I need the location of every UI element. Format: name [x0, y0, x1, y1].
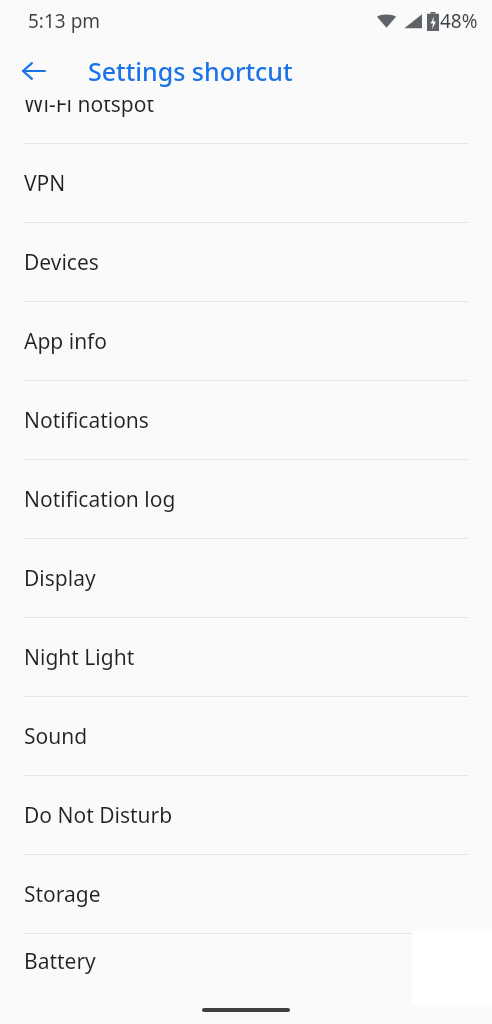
staticText: Do Not Disturb: [24, 801, 173, 830]
button[interactable]: Night Light: [0, 618, 492, 697]
staticText: Display: [24, 564, 96, 593]
button[interactable]: Battery: [0, 934, 492, 989]
staticText: App info: [24, 327, 108, 356]
staticText: Sound: [24, 722, 88, 751]
staticText: Devices: [24, 248, 99, 277]
button[interactable]: Do Not Disturb: [0, 776, 492, 855]
staticText: Notification log: [24, 485, 176, 514]
button[interactable]: Wi-Fi hotspot: [0, 100, 492, 144]
button[interactable]: Storage: [0, 855, 492, 934]
button[interactable]: Devices: [0, 223, 492, 302]
button[interactable]: Display: [0, 539, 492, 618]
button[interactable]: Notifications: [0, 381, 492, 460]
button[interactable]: VPN: [0, 144, 492, 223]
staticText: VPN: [24, 169, 66, 198]
button[interactable]: Back: [10, 47, 58, 95]
staticText: 5:13 pm: [28, 8, 101, 34]
staticText: Battery: [24, 947, 96, 976]
staticText: Wi-Fi hotspot: [24, 100, 155, 119]
button[interactable]: App info: [0, 302, 492, 381]
staticText: 48%: [440, 8, 478, 34]
staticText: Storage: [24, 880, 101, 909]
button[interactable]: Sound: [0, 697, 492, 776]
staticText: Settings shortcut: [88, 54, 293, 88]
staticText: Notifications: [24, 406, 149, 435]
button[interactable]: Notification log: [0, 460, 492, 539]
staticText: Night Light: [24, 643, 135, 672]
